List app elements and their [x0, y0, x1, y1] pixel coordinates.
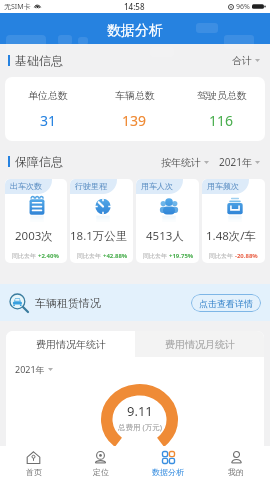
button[interactable]: 费用情况年统计 [6, 331, 135, 357]
staticText: 1.48次/车 [206, 228, 257, 244]
staticText: 点击查看详情 [199, 298, 253, 309]
staticText: 费用情况年统计 [36, 338, 106, 351]
button[interactable]: 点击查看详情 [191, 294, 261, 312]
staticText: +2.40% [38, 252, 59, 260]
staticText: 我的 [228, 467, 244, 477]
staticText: 行驶里程 [75, 181, 107, 191]
staticText: 合计 [232, 54, 252, 67]
button[interactable]: 数据分析 [134, 446, 202, 480]
staticText: 总费用 (万元) [118, 422, 162, 432]
button[interactable]: 单位总数 [5, 77, 91, 141]
staticText: 定位 [93, 467, 109, 477]
staticText: 出车次数 [10, 181, 42, 191]
staticText: 车辆租赁情况 [35, 296, 101, 310]
button[interactable]: 首页 [0, 446, 67, 480]
button[interactable]: 出车次数 [5, 179, 67, 263]
button[interactable]: 我的 [202, 446, 270, 480]
staticText: 2003次 [15, 228, 53, 244]
staticText: 费用情况月统计 [165, 338, 235, 351]
button[interactable]: 定位 [67, 446, 134, 480]
button[interactable]: 车辆总数 [91, 77, 178, 141]
staticText: 保障信息 [15, 154, 63, 169]
staticText: +19.75% [169, 252, 194, 260]
staticText: 单位总数 [28, 89, 68, 102]
staticText: 同比去年 [209, 252, 233, 260]
button[interactable]: 用车人次 [136, 179, 199, 263]
button[interactable]: 费用情况月统计 [135, 331, 264, 357]
staticText: 2021年 [15, 363, 45, 375]
staticText: 数据分析 [107, 22, 163, 40]
button[interactable]: 车辆租赁情况 [9, 284, 261, 321]
staticText: 31 [40, 111, 57, 130]
staticText: 14:58 [124, 1, 145, 12]
staticText: -20.88% [235, 252, 258, 260]
staticText: 驾驶员总数 [197, 89, 247, 102]
staticText: 18.1万公里 [70, 228, 128, 244]
button[interactable]: 行驶里程 [70, 179, 133, 263]
staticText: 同比去年 [77, 252, 101, 260]
staticText: 4513人 [146, 228, 184, 244]
staticText: 同比去年 [12, 252, 36, 260]
staticText: 2021年 [219, 155, 252, 169]
staticText: 数据分析 [152, 467, 184, 477]
staticText: 无SIM卡 [4, 2, 31, 12]
staticText: 96% [236, 2, 250, 12]
staticText: 116 [209, 111, 234, 130]
staticText: 同比去年 [143, 252, 167, 260]
button[interactable]: 用车频次 [202, 179, 265, 263]
staticText: 基础信息 [15, 53, 63, 68]
staticText: 用车人次 [141, 181, 173, 191]
staticText: +42.88% [103, 252, 128, 260]
staticText: 用车频次 [207, 181, 239, 191]
staticText: 9.11 [127, 402, 153, 420]
button[interactable]: 驾驶员总数 [178, 77, 265, 141]
staticText: 首页 [26, 467, 42, 477]
staticText: 139 [122, 111, 147, 130]
staticText: 车辆总数 [115, 89, 155, 102]
staticText: 按年统计 [161, 156, 201, 169]
